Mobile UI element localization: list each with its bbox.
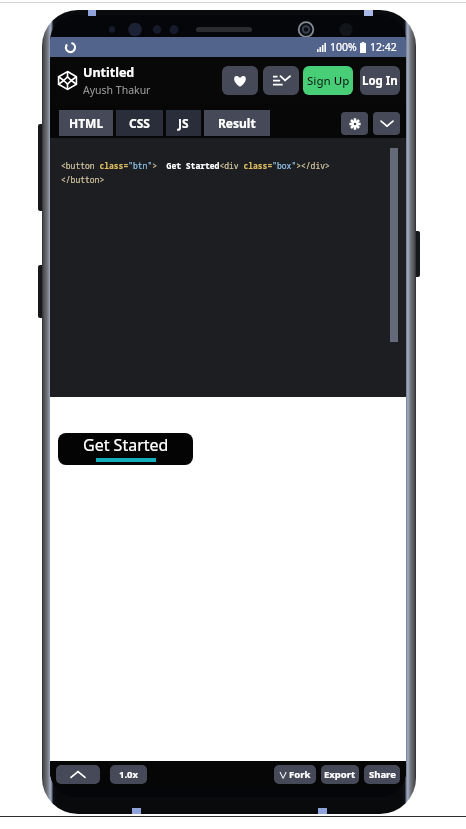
button[interactable]: Sign Up (303, 66, 353, 95)
staticText: Result (218, 115, 256, 131)
staticText: Untitled (83, 64, 135, 81)
staticText: Share (369, 768, 396, 781)
button[interactable]: CodePen logo (58, 71, 77, 90)
button[interactable]: CSS (116, 110, 163, 136)
staticText: Get Started (83, 434, 169, 456)
staticText: HTML (69, 115, 104, 131)
button[interactable]: Expand panel (373, 112, 400, 135)
button[interactable]: Log In (360, 66, 400, 95)
staticText: Sign Up (307, 73, 350, 89)
staticText: 100% (330, 40, 357, 54)
button[interactable]: Export (321, 765, 359, 784)
staticText: Export (324, 768, 356, 781)
staticText: 1.0x (119, 768, 139, 781)
button[interactable]: HTML (59, 110, 113, 136)
button[interactable]: Expand editor (56, 765, 100, 784)
button[interactable]: Result (204, 110, 270, 136)
button[interactable]: Fork (274, 765, 316, 784)
button[interactable]: 1.0x (110, 765, 147, 784)
staticText: CSS (129, 115, 150, 131)
staticText: Ayush Thakur (83, 83, 151, 97)
staticText: <button class="btn"> Get Started<div cla… (61, 160, 330, 171)
button[interactable]: Get Started (58, 433, 193, 465)
button[interactable]: Like (222, 66, 258, 95)
button[interactable]: Share (364, 765, 400, 784)
staticText: 12:42 (370, 40, 397, 54)
staticText: </button> (61, 174, 105, 185)
staticText: Log In (362, 73, 398, 89)
button[interactable]: JS (166, 110, 201, 136)
button[interactable]: Sort (263, 66, 299, 95)
staticText: JS (178, 115, 189, 131)
staticText: Fork (289, 768, 311, 781)
button[interactable]: Settings (341, 112, 368, 135)
